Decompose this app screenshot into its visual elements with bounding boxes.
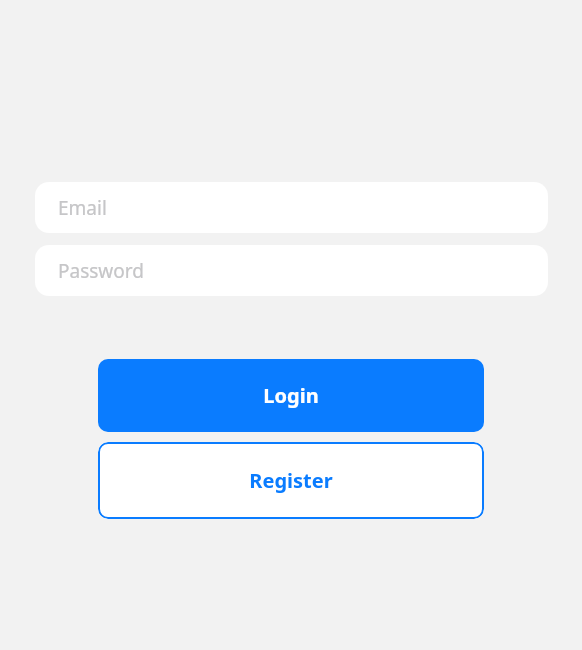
staticText: Register xyxy=(249,467,333,494)
staticText: Login xyxy=(263,382,319,409)
button[interactable]: Register xyxy=(98,442,484,519)
button[interactable]: Login xyxy=(98,359,484,432)
staticText: Password xyxy=(58,258,144,284)
button[interactable]: Email xyxy=(35,182,548,233)
button[interactable]: Password xyxy=(35,245,548,296)
staticText: Email xyxy=(58,195,107,221)
